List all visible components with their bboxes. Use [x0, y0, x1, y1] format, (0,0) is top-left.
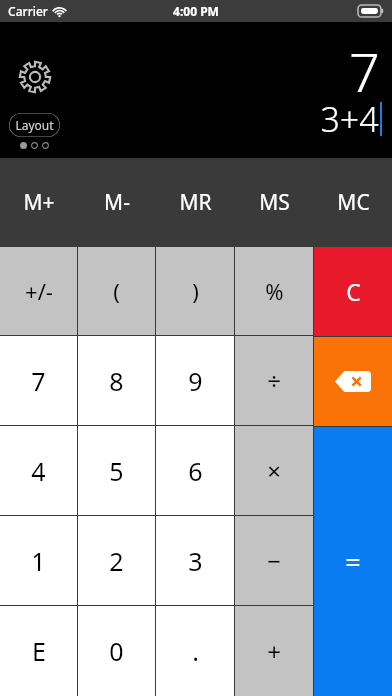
- button[interactable]: M+: [0, 158, 77, 246]
- button[interactable]: 5: [78, 426, 155, 515]
- staticText: Carrier: [8, 3, 48, 19]
- button[interactable]: E: [0, 606, 77, 696]
- staticText: MR: [179, 188, 212, 217]
- button[interactable]: 4: [0, 426, 77, 515]
- button[interactable]: Layout: [9, 113, 60, 137]
- button[interactable]: MS: [235, 158, 313, 246]
- button[interactable]: +/-: [0, 247, 77, 335]
- staticText: 4:00 PM: [173, 3, 219, 19]
- staticText: ×: [267, 454, 281, 487]
- button[interactable]: MC: [314, 158, 392, 246]
- staticText: 5: [109, 454, 124, 488]
- button[interactable]: ): [156, 247, 234, 335]
- staticText: 9: [188, 364, 203, 398]
- staticText: .: [192, 634, 199, 668]
- button[interactable]: Settings: [14, 56, 56, 98]
- button[interactable]: ×: [235, 426, 313, 515]
- staticText: MC: [337, 188, 370, 217]
- button[interactable]: 6: [156, 426, 234, 515]
- staticText: 6: [188, 454, 203, 488]
- staticText: 8: [109, 364, 124, 398]
- button[interactable]: −: [235, 516, 313, 605]
- button[interactable]: 1: [0, 516, 77, 605]
- staticText: MS: [259, 188, 290, 217]
- staticText: 3+4: [320, 96, 379, 142]
- button[interactable]: (: [78, 247, 155, 335]
- staticText: +/-: [25, 276, 53, 306]
- staticText: 2: [109, 544, 124, 578]
- staticText: C: [346, 276, 361, 307]
- button[interactable]: 8: [78, 336, 155, 425]
- staticText: 3: [188, 544, 203, 578]
- button[interactable]: 9: [156, 336, 234, 425]
- button[interactable]: +: [235, 606, 313, 696]
- staticText: %: [265, 276, 284, 306]
- button[interactable]: 3: [156, 516, 234, 605]
- staticText: M-: [104, 188, 130, 217]
- staticText: (: [113, 276, 120, 306]
- button[interactable]: 0: [78, 606, 155, 696]
- button[interactable]: C: [314, 247, 392, 336]
- button[interactable]: %: [235, 247, 313, 335]
- button[interactable]: M-: [78, 158, 155, 246]
- staticText: E: [32, 634, 46, 668]
- staticText: −: [267, 544, 281, 577]
- staticText: M+: [23, 188, 55, 217]
- staticText: ): [192, 276, 199, 306]
- staticText: +: [267, 635, 281, 668]
- staticText: 7: [31, 364, 46, 398]
- staticText: Layout: [15, 117, 54, 133]
- button[interactable]: 2: [78, 516, 155, 605]
- staticText: 1: [31, 544, 46, 578]
- staticText: =: [345, 543, 361, 580]
- staticText: 4: [31, 454, 46, 488]
- button[interactable]: =: [314, 427, 392, 696]
- button[interactable]: ÷: [235, 336, 313, 425]
- button[interactable]: MR: [156, 158, 234, 246]
- button[interactable]: Backspace: [314, 337, 392, 426]
- staticText: ÷: [267, 364, 281, 397]
- staticText: 0: [109, 634, 124, 668]
- staticText: 7: [349, 34, 380, 108]
- button[interactable]: .: [156, 606, 234, 696]
- button[interactable]: 7: [0, 336, 77, 425]
